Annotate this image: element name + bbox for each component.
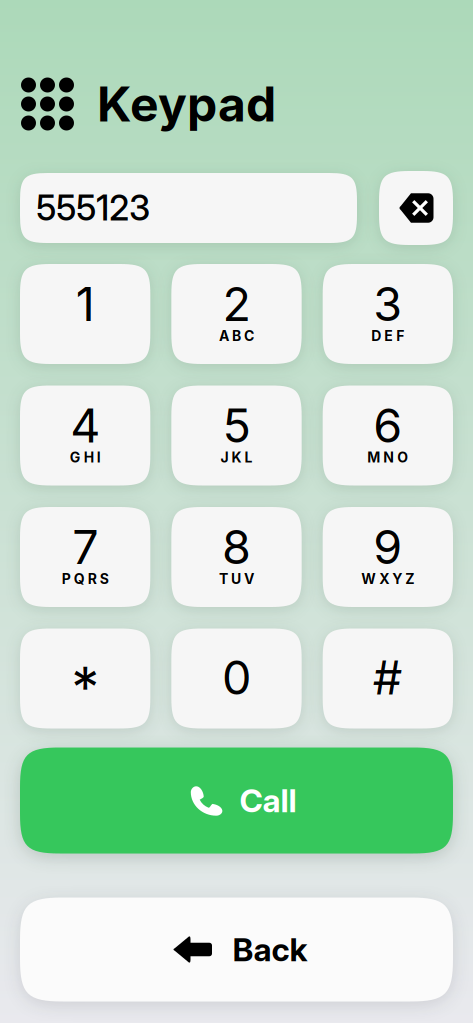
staticText: 5 [222, 397, 250, 454]
staticText: 6 [373, 397, 402, 454]
staticText: 0 [222, 649, 251, 706]
staticText: 9 [373, 519, 402, 575]
button[interactable]: 4 [20, 385, 150, 485]
button[interactable]: Delete [379, 171, 453, 245]
button[interactable]: 3 [323, 264, 453, 364]
staticText: Call [239, 781, 296, 820]
button[interactable]: 9 [323, 507, 453, 607]
staticText: * [71, 654, 99, 721]
button[interactable]: 8 [171, 507, 302, 607]
staticText: 1 [76, 276, 95, 332]
button[interactable]: Back [20, 897, 453, 1001]
staticText: Keypad [97, 75, 276, 133]
staticText: 3 [373, 276, 402, 332]
button[interactable]: 0 [171, 628, 302, 728]
button[interactable]: Call [20, 747, 453, 853]
staticText: # [373, 649, 403, 706]
button[interactable]: * [20, 628, 150, 728]
staticText: J K L [220, 449, 252, 466]
staticText: 555123 [36, 187, 150, 229]
staticText: 4 [70, 397, 100, 454]
button[interactable]: 2 [171, 264, 302, 364]
button[interactable]: # [323, 628, 453, 728]
button[interactable]: 5 [171, 385, 302, 485]
staticText: A B C [219, 327, 254, 344]
staticText: 2 [222, 276, 250, 332]
staticText: M N O [367, 449, 408, 466]
staticText: 8 [222, 519, 251, 575]
button[interactable]: 1 [20, 264, 150, 364]
staticText: G H I [70, 449, 101, 466]
staticText: P Q R S [62, 570, 109, 587]
staticText: D E F [371, 327, 404, 344]
button[interactable]: 6 [323, 385, 453, 485]
staticText: T U V [219, 570, 254, 587]
staticText: 7 [72, 519, 98, 575]
button[interactable]: 7 [20, 507, 150, 607]
staticText: Back [232, 930, 307, 969]
staticText: W X Y Z [361, 570, 414, 587]
